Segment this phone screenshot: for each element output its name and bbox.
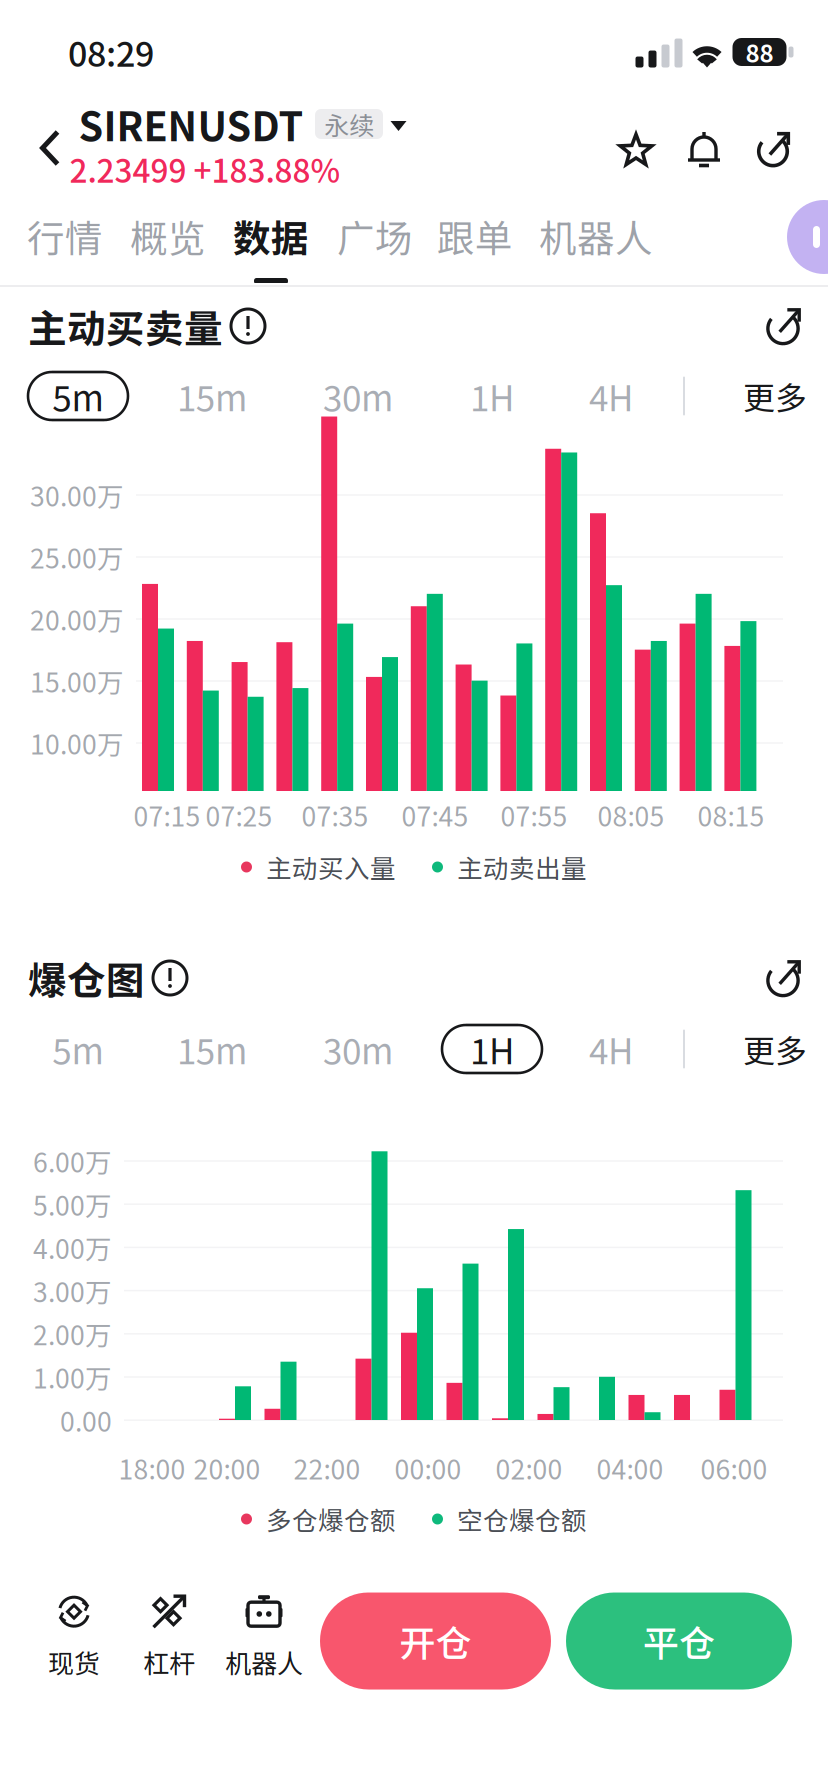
staticText: 机器人 — [225, 1643, 303, 1681]
staticText: 04:00 — [596, 1449, 663, 1487]
staticText: 15m — [177, 371, 247, 421]
staticText: 07:45 — [401, 796, 468, 834]
staticText: 平仓 — [643, 1615, 715, 1667]
staticText: 6.00万 — [33, 1142, 112, 1180]
staticText: 杠杆 — [143, 1643, 195, 1681]
staticText: 22:00 — [293, 1449, 360, 1487]
button[interactable]: 更多 — [743, 372, 807, 420]
button[interactable]: 现货 — [24, 1594, 124, 1680]
staticText: 行情 — [27, 209, 103, 263]
staticText: 主动买卖量 — [28, 298, 223, 354]
button[interactable]: 行情 — [17, 197, 113, 289]
button[interactable]: 更多 — [743, 1025, 807, 1073]
staticText: 88 — [745, 35, 773, 69]
staticText: 0.00 — [60, 1401, 112, 1439]
staticText: 08:29 — [68, 27, 154, 77]
button[interactable]: Add to favorites — [606, 112, 666, 190]
staticText: 02:00 — [495, 1449, 562, 1487]
staticText: 主动卖出量 — [457, 848, 587, 885]
button[interactable]: 跟单 — [427, 197, 523, 289]
staticText: 4H — [589, 1024, 633, 1074]
staticText: 20:00 — [193, 1449, 260, 1487]
staticText: 5m — [52, 371, 103, 421]
staticText: 5.00万 — [33, 1185, 112, 1223]
staticText: 4H — [589, 371, 633, 421]
button[interactable]: Open chart full screen — [760, 298, 806, 354]
staticText: 06:00 — [700, 1449, 767, 1487]
staticText: 1H — [470, 1024, 514, 1074]
button[interactable]: 5m — [28, 372, 128, 420]
button[interactable]: 15m — [162, 372, 262, 420]
staticText: 07:55 — [500, 796, 567, 834]
staticText: 07:25 — [205, 796, 272, 834]
button[interactable]: 机器人 — [214, 1594, 314, 1680]
button[interactable]: 平仓 — [566, 1592, 792, 1689]
staticText: 18:00 — [118, 1449, 185, 1487]
staticText: 30.00万 — [30, 476, 124, 514]
staticText: 开仓 — [399, 1615, 471, 1667]
button[interactable]: 15m — [162, 1025, 262, 1073]
staticText: 30m — [323, 1024, 393, 1074]
staticText: 00:00 — [394, 1449, 461, 1487]
staticText: 数据 — [233, 209, 309, 263]
staticText: 跟单 — [437, 209, 513, 263]
button[interactable]: Back — [18, 104, 82, 192]
staticText: 15.00万 — [30, 662, 124, 700]
staticText: 07:35 — [301, 796, 368, 834]
staticText: 15m — [177, 1024, 247, 1074]
button[interactable]: 广场 — [327, 197, 423, 289]
button[interactable]: Share — [743, 110, 803, 188]
staticText: 主动买入量 — [266, 848, 396, 885]
staticText: SIRENUSDT — [78, 95, 303, 153]
staticText: 更多 — [743, 1026, 807, 1072]
staticText: 多仓爆仓额 — [266, 1500, 396, 1537]
button[interactable]: 1H — [442, 1025, 542, 1073]
button[interactable]: 1H — [442, 372, 542, 420]
staticText: 更多 — [743, 373, 807, 419]
staticText: 4.00万 — [33, 1228, 112, 1267]
button[interactable]: 开仓 — [320, 1592, 551, 1689]
button[interactable]: 4H — [561, 1025, 661, 1073]
staticText: 08:15 — [697, 796, 764, 834]
staticText: 5m — [52, 1024, 103, 1074]
button[interactable]: 4H — [561, 372, 661, 420]
staticText: 10.00万 — [30, 724, 124, 762]
staticText: 概览 — [130, 209, 206, 263]
button[interactable]: 杠杆 — [119, 1594, 219, 1680]
staticText: 空仓爆仓额 — [457, 1500, 587, 1537]
staticText: 07:15 — [133, 796, 200, 834]
staticText: 3.00万 — [33, 1271, 112, 1310]
staticText: 永续 — [324, 106, 374, 142]
button[interactable]: 概览 — [120, 197, 216, 289]
button[interactable]: Price alerts — [674, 110, 734, 188]
staticText: 30m — [323, 371, 393, 421]
button[interactable]: 30m — [308, 1025, 408, 1073]
staticText: 08:05 — [597, 796, 664, 834]
staticText: 1H — [470, 371, 514, 421]
button[interactable]: Assistant — [787, 200, 828, 274]
button[interactable]: Open chart full screen — [760, 950, 806, 1006]
staticText: 20.00万 — [30, 600, 124, 638]
staticText: 2.23499 +183.88% — [69, 146, 340, 192]
staticText: 爆仓图 — [28, 950, 145, 1006]
button[interactable]: 机器人 — [531, 197, 661, 289]
staticText: 现货 — [48, 1643, 100, 1681]
button[interactable]: 5m — [28, 1025, 128, 1073]
staticText: 1.00万 — [33, 1358, 112, 1396]
button[interactable]: 数据 — [223, 197, 319, 289]
button[interactable]: 30m — [308, 372, 408, 420]
staticText: 广场 — [337, 209, 413, 263]
staticText: 2.00万 — [33, 1315, 112, 1353]
staticText: 机器人 — [539, 209, 653, 263]
staticText: 25.00万 — [30, 538, 124, 576]
